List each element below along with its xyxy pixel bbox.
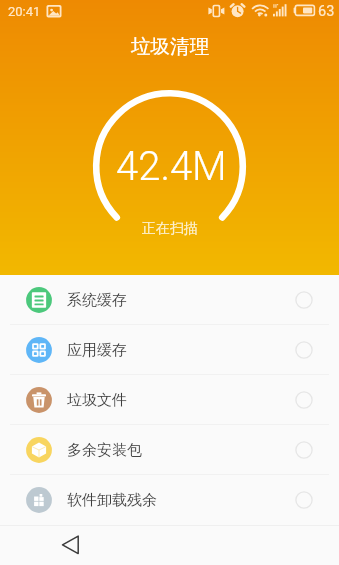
staticText: 63 (318, 3, 335, 20)
button[interactable]: 软件卸载残余 (0, 475, 339, 525)
button[interactable]: 系统缓存 (0, 275, 339, 325)
staticText: 多余安装包 (67, 441, 142, 460)
staticText: 20:41 (8, 4, 41, 19)
staticText: 软件卸载残余 (67, 491, 157, 510)
button[interactable]: 多余安装包 (0, 425, 339, 475)
button[interactable]: 垃圾文件 (0, 375, 339, 425)
staticText: 垃圾文件 (67, 391, 127, 410)
staticText: 正在扫描 (142, 220, 198, 238)
staticText: 42.4M (116, 143, 227, 190)
button[interactable]: Back (50, 525, 90, 565)
button[interactable]: 应用缓存 (0, 325, 339, 375)
staticText: 系统缓存 (67, 291, 127, 310)
staticText: 应用缓存 (67, 341, 127, 360)
staticText: 垃圾清理 (131, 34, 209, 59)
